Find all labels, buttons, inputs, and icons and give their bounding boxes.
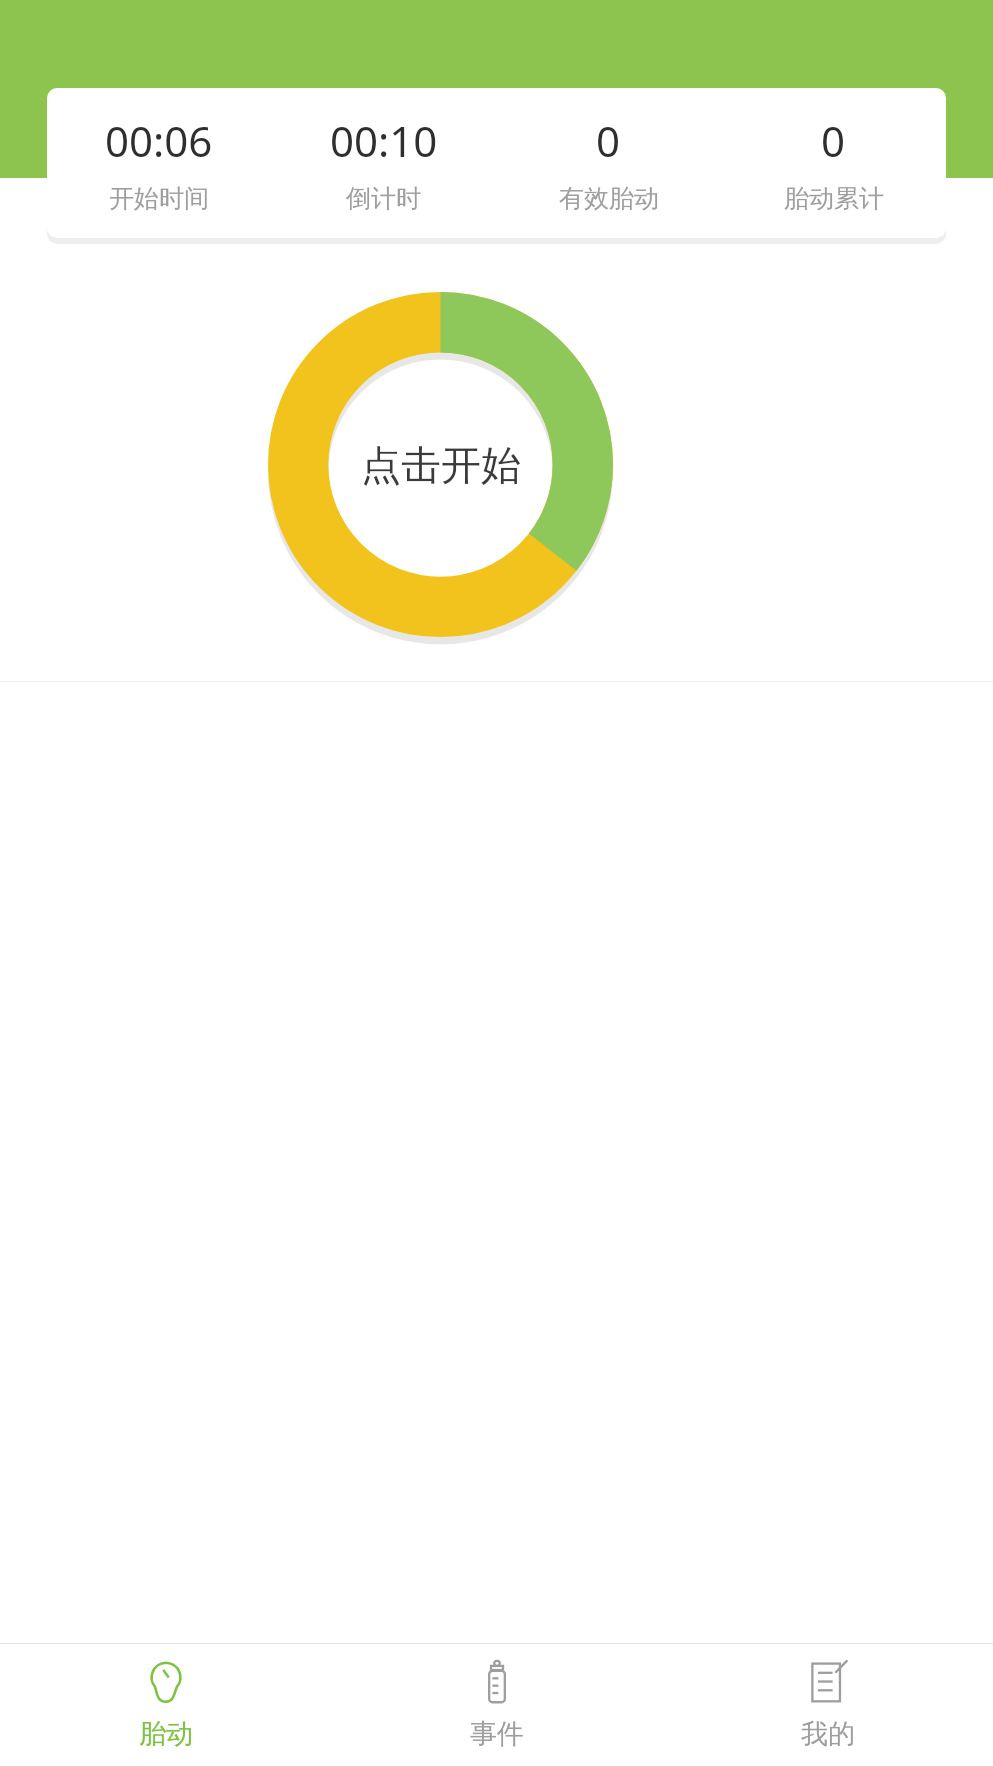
button[interactable]: 0: [721, 88, 946, 238]
staticText: 开始时间: [109, 183, 209, 214]
staticText: 有效胎动: [559, 183, 659, 214]
button[interactable]: 00:10: [271, 88, 496, 238]
button[interactable]: 事件: [331, 1644, 662, 1766]
button[interactable]: 00:06: [47, 88, 271, 238]
staticText: 0: [596, 112, 621, 169]
staticText: 0: [821, 112, 846, 169]
button[interactable]: 点击开始 计时: [268, 292, 613, 637]
staticText: 我的: [801, 1717, 855, 1751]
button[interactable]: 我的: [662, 1644, 993, 1766]
staticText: 00:10: [330, 112, 438, 169]
staticText: 倒计时: [346, 183, 421, 214]
staticText: 00:06: [105, 112, 213, 169]
staticText: 点击开始: [361, 440, 521, 490]
button[interactable]: 胎动: [0, 1644, 331, 1766]
staticText: 胎动累计: [784, 183, 884, 214]
staticText: 事件: [470, 1717, 524, 1751]
button[interactable]: 0: [496, 88, 721, 238]
staticText: 胎动: [139, 1717, 193, 1751]
